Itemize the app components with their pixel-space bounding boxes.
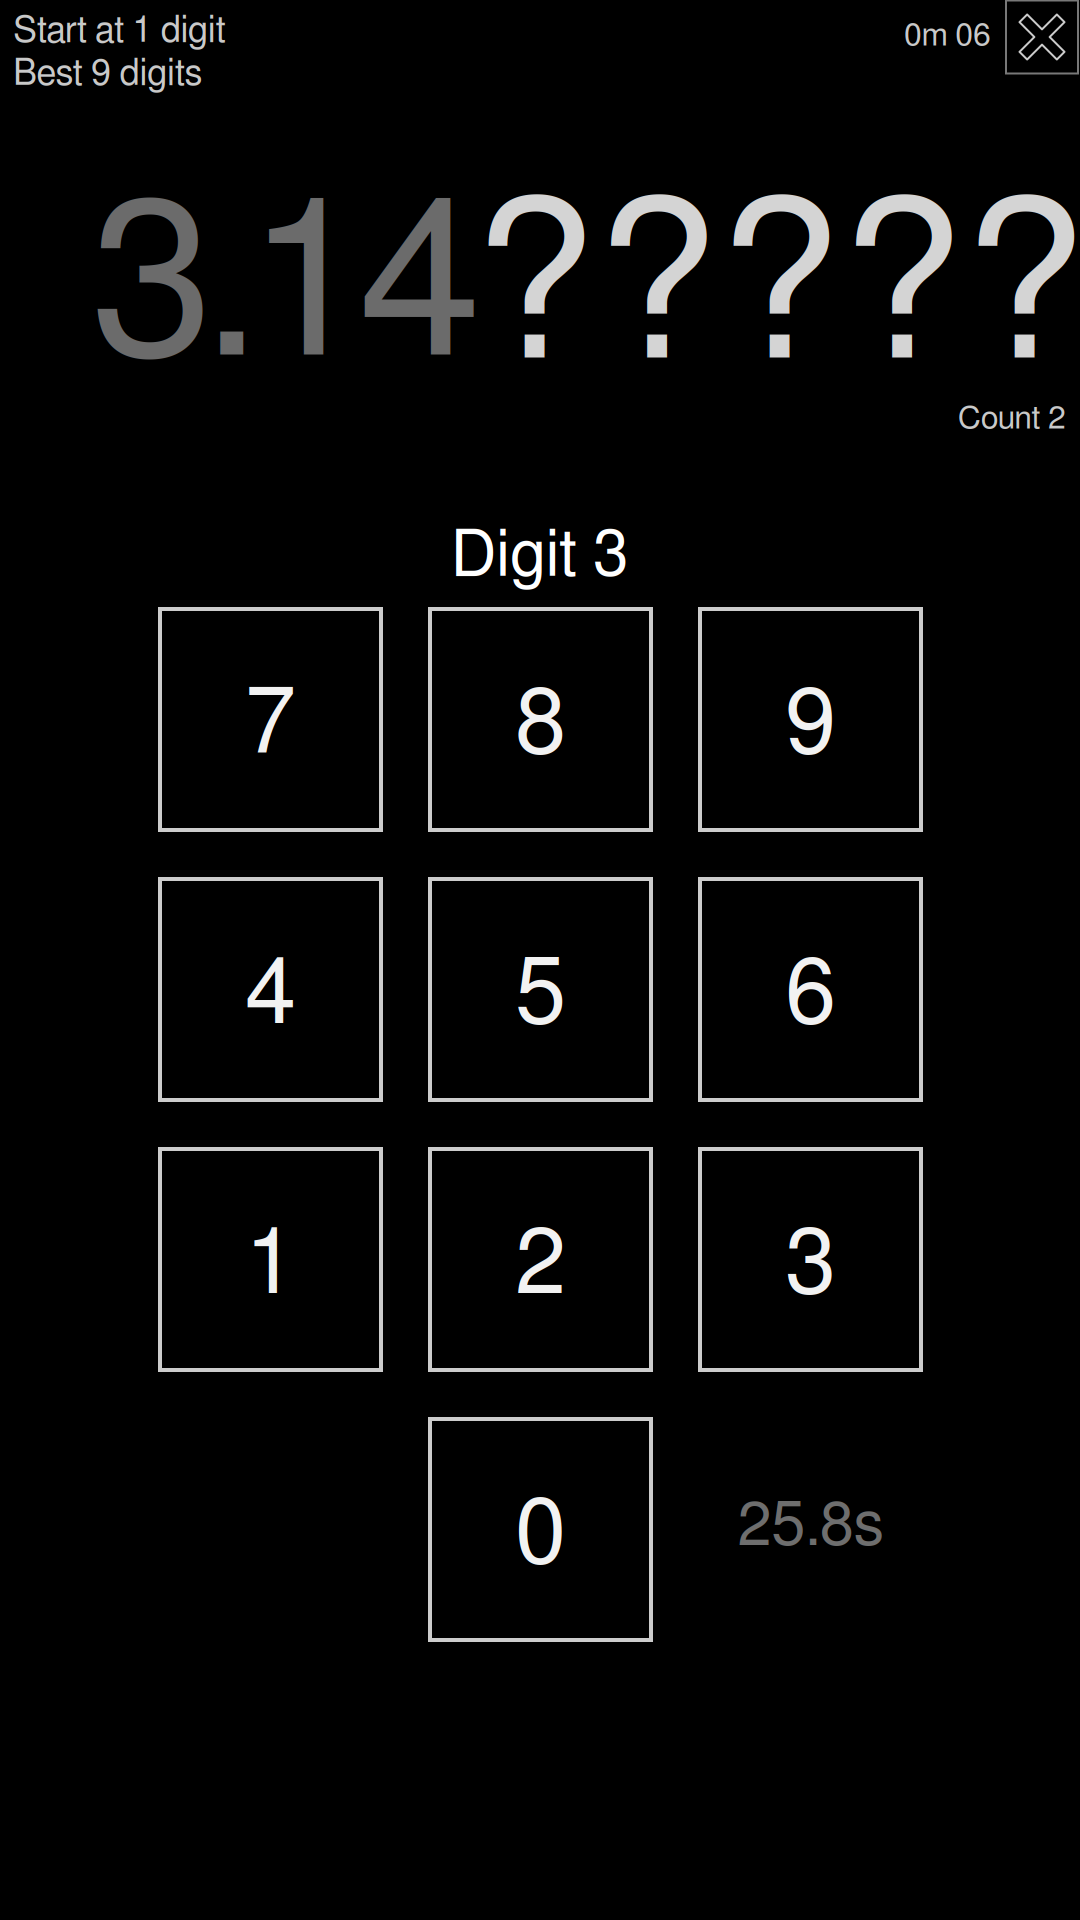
button[interactable]: 6 [698, 877, 923, 1102]
staticText: 3.14 [90, 177, 481, 399]
button[interactable]: 2 [428, 1147, 653, 1372]
button[interactable]: 3 [698, 1147, 923, 1372]
staticText: 8 [515, 679, 566, 771]
staticText: 25.8s [738, 1496, 883, 1557]
button[interactable]: 1 [158, 1147, 383, 1372]
staticText: 4 [245, 949, 296, 1041]
staticText: 6 [785, 949, 836, 1041]
staticText: 0m 06 [904, 20, 991, 52]
staticText: 9 [785, 679, 836, 771]
button[interactable]: Close [1005, 0, 1079, 74]
staticText: Count 2 [958, 403, 1066, 435]
staticText: 5 [515, 949, 566, 1041]
staticText: ????? [471, 180, 1080, 402]
staticText: 2 [515, 1219, 566, 1311]
button[interactable]: 8 [428, 607, 653, 832]
staticText: Best 9 digits [13, 56, 203, 92]
button[interactable]: 7 [158, 607, 383, 832]
button[interactable]: 0 [428, 1417, 653, 1642]
staticText: 3 [785, 1219, 836, 1311]
staticText: Start at 1 digit [13, 13, 225, 49]
button[interactable]: 4 [158, 877, 383, 1102]
staticText: 7 [245, 679, 296, 771]
staticText: 1 [245, 1219, 296, 1311]
staticText: 0 [515, 1489, 566, 1581]
button[interactable]: 9 [698, 607, 923, 832]
button[interactable]: 5 [428, 877, 653, 1102]
staticText: Digit 3 [451, 524, 629, 588]
